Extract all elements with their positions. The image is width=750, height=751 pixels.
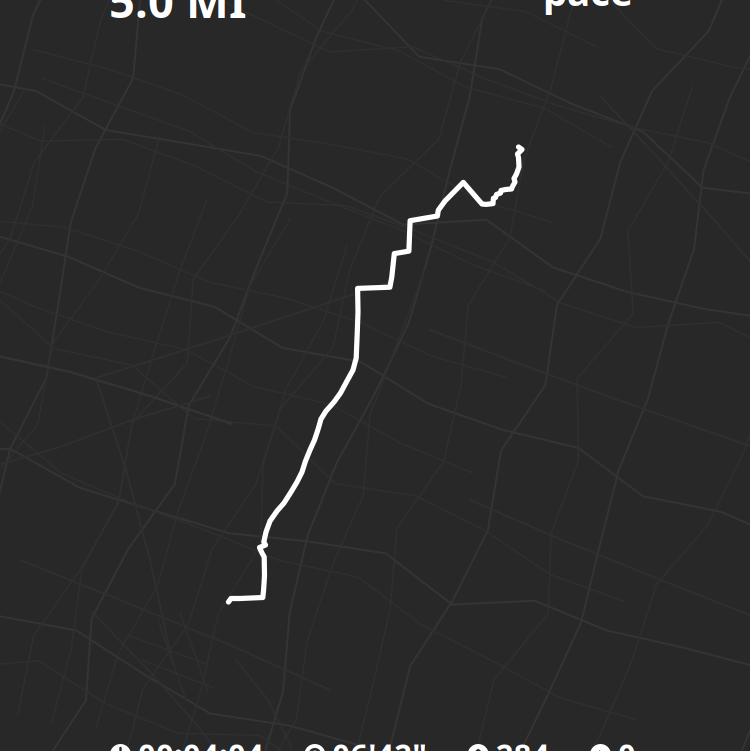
button[interactable]: 284 (468, 734, 550, 751)
button[interactable]: 00:04:04 (110, 734, 264, 751)
button[interactable]: 06'42" (304, 734, 427, 751)
staticText: 284 (496, 734, 550, 751)
staticText: pace (543, 0, 633, 17)
staticText: 06'42" (332, 734, 427, 751)
staticText: 0 (618, 734, 636, 751)
staticText: 00:04:04 (138, 734, 264, 751)
button[interactable]: 5.0 MI (109, 0, 247, 31)
button[interactable]: 0 (590, 734, 636, 751)
staticText: 5.0 MI (109, 0, 247, 31)
button[interactable]: pace (543, 0, 633, 17)
